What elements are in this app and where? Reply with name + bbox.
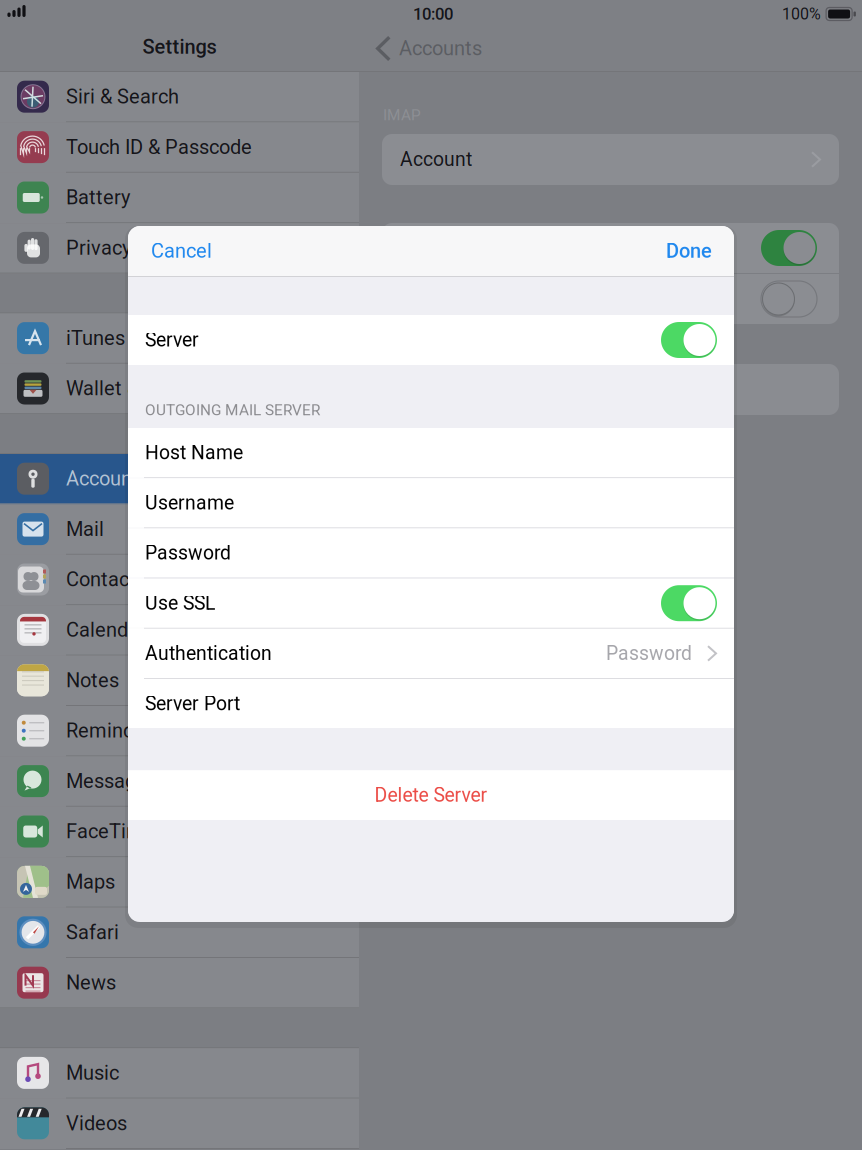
- staticText: Delete Server: [374, 784, 487, 807]
- staticText: Videos: [66, 1112, 127, 1135]
- button[interactable]: Accounts & Passwords: [0, 454, 359, 504]
- staticText: Authentication: [145, 642, 272, 665]
- staticText: Accounts: [399, 37, 482, 60]
- staticText: Music: [66, 1061, 119, 1085]
- button[interactable]: News: [0, 958, 359, 1008]
- staticText: Battery: [66, 186, 130, 209]
- staticText: Done: [666, 239, 712, 263]
- button[interactable]: Accounts: [359, 26, 862, 71]
- button[interactable]: Delete Server: [128, 770, 734, 820]
- staticText: Username: [145, 491, 234, 514]
- button[interactable]: Music: [0, 1048, 359, 1099]
- button[interactable]: Cancel: [128, 226, 226, 276]
- staticText: Use SSL: [145, 592, 215, 615]
- staticText: Contacts: [66, 568, 146, 591]
- staticText: iTunes & App Store: [66, 326, 234, 350]
- button[interactable]: Password: [128, 528, 734, 578]
- staticText: Password: [145, 542, 231, 564]
- staticText: Password: [606, 642, 692, 665]
- staticText: 10:00: [413, 4, 453, 24]
- staticText: Siri & Search: [66, 85, 179, 108]
- staticText: Accounts & Passwords: [66, 467, 269, 490]
- button[interactable]: Reminders: [0, 706, 359, 756]
- button[interactable]: Calendar: [0, 605, 359, 656]
- staticText: Settings: [142, 35, 216, 59]
- button[interactable]: Messages: [0, 756, 359, 807]
- button[interactable]: Siri & Search: [0, 72, 359, 122]
- button[interactable]: Server: [128, 315, 734, 365]
- button[interactable]: Privacy: [0, 223, 359, 274]
- staticText: Safari: [66, 921, 119, 944]
- staticText: Messages: [66, 769, 157, 793]
- button[interactable]: Maps: [0, 857, 359, 908]
- button[interactable]: Use SSL: [128, 579, 734, 628]
- button[interactable]: Done: [652, 226, 734, 276]
- button[interactable]: Battery: [0, 173, 359, 223]
- staticText: Server: [145, 329, 199, 351]
- staticText: News: [66, 971, 116, 994]
- button[interactable]: Authentication: [128, 629, 734, 678]
- button[interactable]: Wallet & Apple Pay: [0, 364, 359, 414]
- staticText: Privacy: [66, 236, 131, 260]
- staticText: Server Port: [145, 692, 240, 715]
- button[interactable]: Videos: [0, 1099, 359, 1149]
- button[interactable]: iTunes & App Store: [0, 313, 359, 364]
- staticText: 100%: [782, 5, 821, 23]
- staticText: Maps: [66, 870, 115, 894]
- staticText: FaceTime: [66, 820, 155, 843]
- staticText: Notes: [66, 669, 119, 692]
- button[interactable]: Touch ID & Passcode: [0, 122, 359, 173]
- staticText: OUTGOING MAIL SERVER: [145, 401, 320, 419]
- button[interactable]: Account: [382, 134, 839, 185]
- button[interactable]: Mail: [0, 504, 359, 555]
- staticText: Host Name: [145, 441, 243, 464]
- staticText: Wallet & Apple Pay: [66, 377, 233, 400]
- staticText: Calendar: [66, 618, 146, 642]
- staticText: IMAP: [383, 106, 421, 124]
- staticText: Reminders: [66, 719, 162, 742]
- button[interactable]: Username: [128, 478, 734, 527]
- staticText: Cancel: [151, 239, 212, 263]
- button[interactable]: Server Port: [128, 679, 734, 728]
- button[interactable]: FaceTime: [0, 807, 359, 857]
- button[interactable]: Safari: [0, 908, 359, 958]
- button[interactable]: Host Name: [128, 428, 734, 477]
- button[interactable]: Notes: [0, 656, 359, 706]
- staticText: Mail: [66, 517, 104, 541]
- button[interactable]: Contacts: [0, 555, 359, 605]
- staticText: Account: [400, 148, 472, 171]
- staticText: Touch ID & Passcode: [66, 135, 252, 159]
